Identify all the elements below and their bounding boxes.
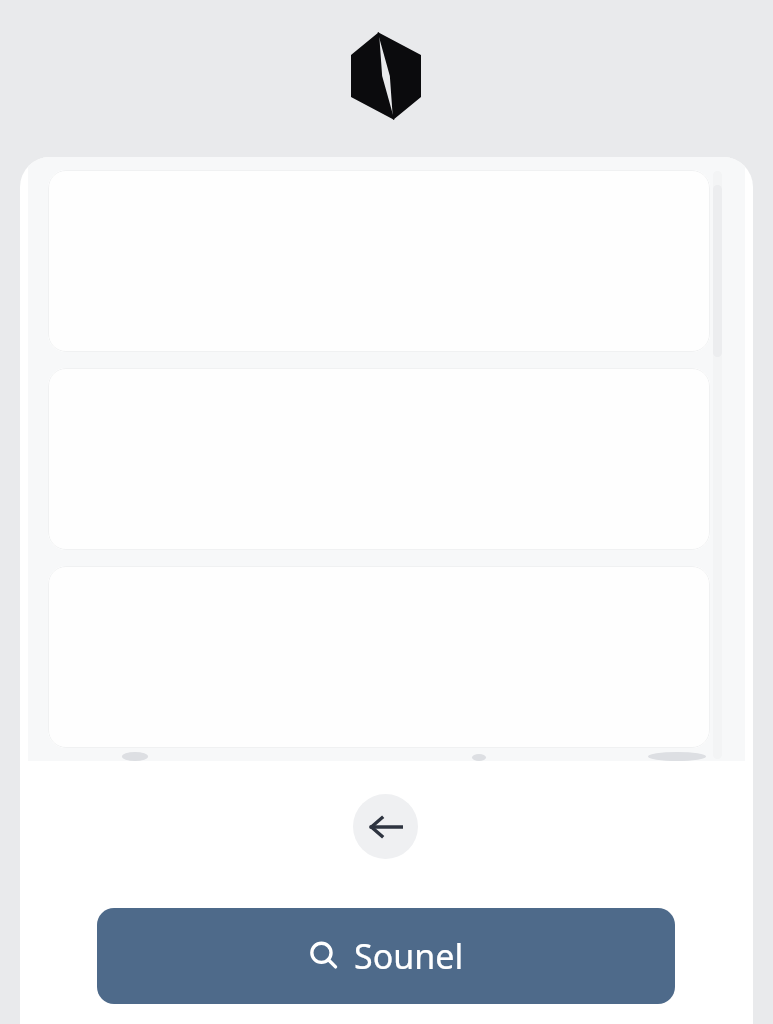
button[interactable]: Back <box>353 794 418 859</box>
other: Brand logo <box>351 32 421 120</box>
button[interactable]: Sounel <box>97 908 675 1004</box>
staticText: Sounel <box>354 933 464 979</box>
